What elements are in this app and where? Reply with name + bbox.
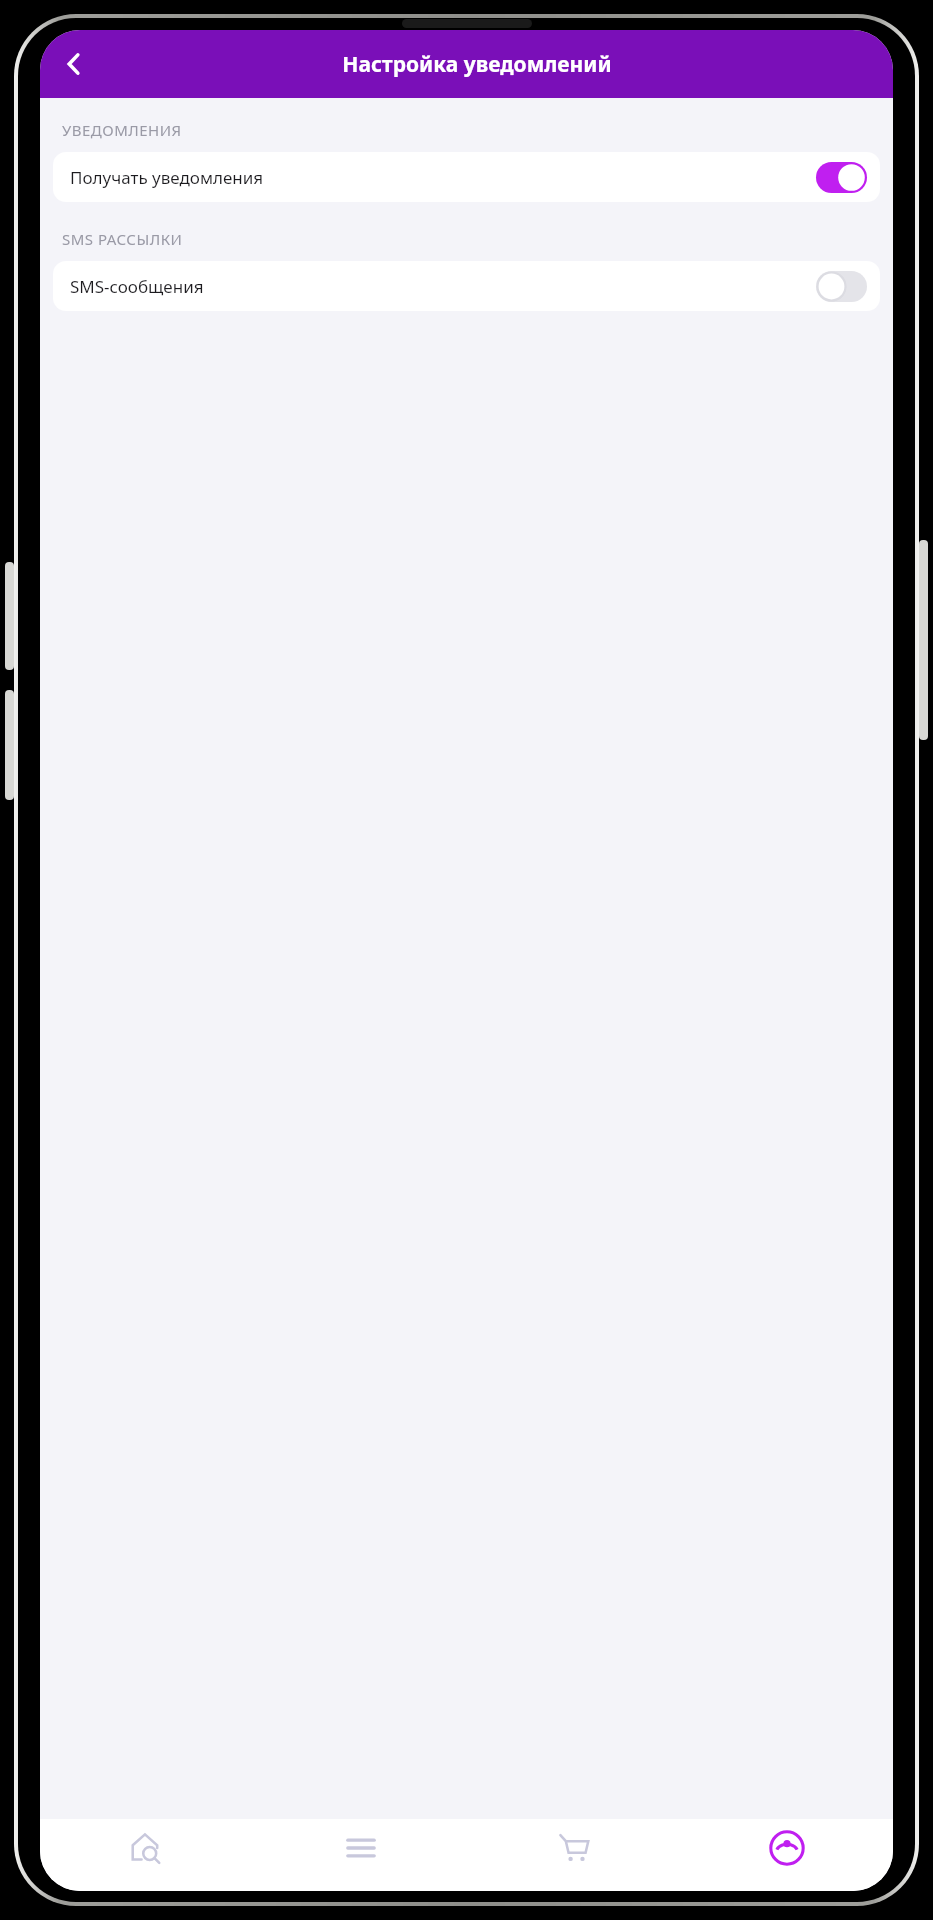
staticText: Получать уведомления — [70, 166, 816, 189]
button[interactable]: Получать уведомления — [53, 152, 880, 202]
staticText: УВЕДОМЛЕНИЯ — [62, 120, 182, 140]
button[interactable]: Выключить — [816, 162, 867, 193]
button[interactable]: Профиль — [680, 1819, 893, 1891]
staticText: Настройка уведомлений — [342, 50, 612, 79]
button[interactable]: Главная — [40, 1819, 254, 1891]
staticText: SMS-сообщения — [70, 275, 816, 298]
button[interactable]: Каталог — [254, 1819, 467, 1891]
button[interactable]: Корзина — [467, 1819, 680, 1891]
button[interactable]: SMS-сообщения — [53, 261, 880, 311]
button[interactable]: Назад — [46, 36, 102, 92]
button[interactable]: Включить — [816, 271, 867, 302]
staticText: SMS РАССЫЛКИ — [62, 229, 183, 249]
